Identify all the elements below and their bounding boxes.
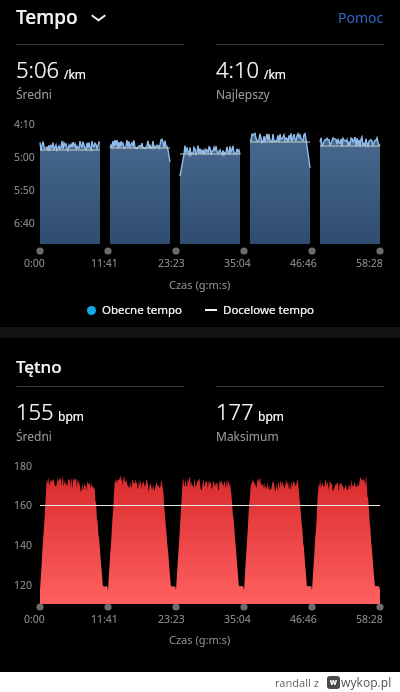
staticText: 11:41 xyxy=(91,612,118,626)
other: Change metric xyxy=(90,12,107,23)
staticText: 46:46 xyxy=(290,612,317,626)
staticText: 140 xyxy=(14,538,33,552)
staticText: Tempo xyxy=(16,4,78,30)
staticText: Najlepszy xyxy=(216,86,270,102)
button[interactable]: 5:06 xyxy=(16,44,184,102)
staticText: randall z xyxy=(275,675,319,690)
staticText: 120 xyxy=(14,578,33,592)
staticText: W xyxy=(330,678,337,688)
staticText: bpm xyxy=(258,408,284,424)
staticText: Tętno xyxy=(16,355,62,378)
staticText: bpm xyxy=(58,408,84,424)
staticText: 23:23 xyxy=(158,256,185,270)
staticText: 0:00 xyxy=(24,612,45,626)
staticText: 4:10 xyxy=(216,54,260,84)
button[interactable]: 4:10 xyxy=(216,44,384,102)
staticText: Czas (g:m:s) xyxy=(169,632,231,647)
staticText: Pomoc xyxy=(338,8,384,27)
staticText: Docelowe tempo xyxy=(223,302,314,318)
staticText: 160 xyxy=(14,498,33,512)
staticText: Maksimum xyxy=(216,428,279,444)
staticText: 155 xyxy=(16,396,54,426)
staticText: 0:00 xyxy=(24,256,45,270)
staticText: 6:40 xyxy=(14,216,35,230)
staticText: 58:28 xyxy=(356,612,383,626)
staticText: wykop.pl xyxy=(341,674,392,690)
staticText: 180 xyxy=(14,459,33,473)
staticText: /km xyxy=(64,66,87,82)
staticText: 177 xyxy=(216,396,254,426)
staticText: Średni xyxy=(16,86,52,102)
staticText: 5:00 xyxy=(14,150,35,164)
staticText: 11:41 xyxy=(91,256,118,270)
staticText: 4:10 xyxy=(14,117,35,131)
staticText: 46:46 xyxy=(290,256,317,270)
staticText: /km xyxy=(264,66,287,82)
staticText: Średni xyxy=(16,428,52,444)
staticText: 5:06 xyxy=(16,54,60,84)
button[interactable]: 155 xyxy=(16,386,184,444)
staticText: 5:50 xyxy=(14,183,35,197)
staticText: 23:23 xyxy=(158,612,185,626)
staticText: Czas (g:m:s) xyxy=(169,277,231,292)
staticText: 58:28 xyxy=(356,256,383,270)
button[interactable]: Pomoc xyxy=(334,2,388,33)
staticText: Obecne tempo xyxy=(102,302,183,318)
staticText: 35:04 xyxy=(224,612,251,626)
button[interactable]: 177 xyxy=(216,386,384,444)
button[interactable]: Tempo xyxy=(16,2,113,32)
staticText: 35:04 xyxy=(224,256,251,270)
